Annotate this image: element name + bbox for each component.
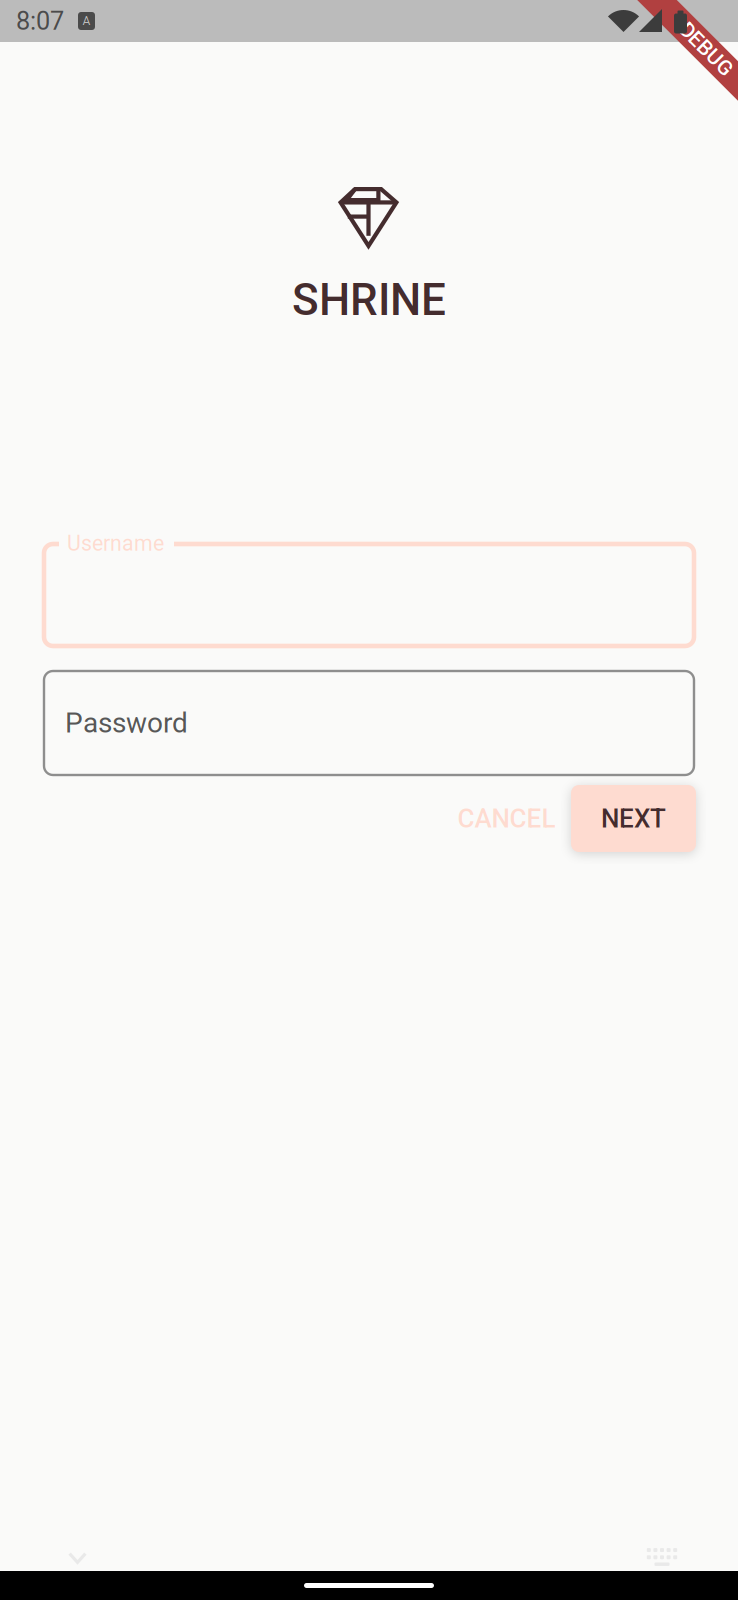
staticText: DEBUG [676,28,738,53]
button[interactable]: Username [44,544,694,646]
button[interactable]: Password [44,671,694,775]
staticText: SHRINE [292,274,446,326]
staticText: Username [67,531,164,556]
staticText: CANCEL [457,803,555,834]
staticText: 8:07 [16,6,64,36]
staticText: NEXT [601,803,666,834]
staticText: Password [65,706,188,739]
button[interactable]: Switch keyboard [648,1549,676,1565]
button[interactable]: NEXT [571,785,696,852]
staticText: A [82,14,90,28]
button[interactable]: Hide keyboard [68,1552,87,1564]
button[interactable]: CANCEL [442,785,571,852]
